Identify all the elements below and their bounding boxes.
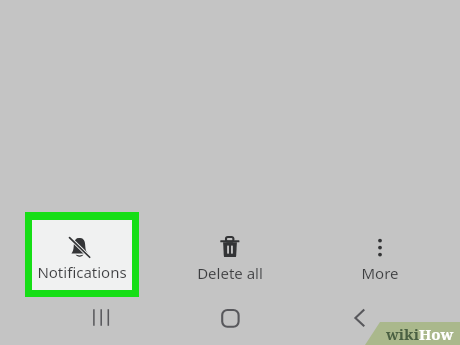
other: More options (374, 236, 386, 256)
button[interactable]: Back (348, 303, 378, 333)
staticText: More (340, 263, 420, 285)
staticText: How (419, 324, 454, 344)
staticText: Notifications (25, 262, 139, 284)
staticText: wiki (386, 324, 419, 344)
staticText: Delete all (190, 263, 270, 285)
button[interactable]: Notifications (25, 212, 139, 297)
button[interactable]: More options (340, 230, 420, 285)
button[interactable]: Delete all (190, 230, 270, 285)
button[interactable]: Recent apps (86, 303, 116, 333)
button[interactable]: Home (215, 303, 245, 333)
